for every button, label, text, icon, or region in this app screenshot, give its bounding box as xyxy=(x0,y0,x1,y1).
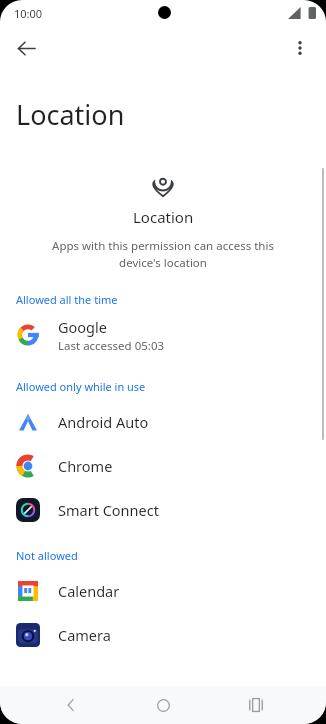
button[interactable]: Calendar xyxy=(0,569,326,613)
staticText: Camera xyxy=(58,625,111,645)
button[interactable]: Smart Connect xyxy=(0,488,326,532)
button[interactable]: Back xyxy=(49,686,93,724)
button[interactable]: More options xyxy=(280,28,320,68)
staticText: Google xyxy=(58,317,107,337)
button[interactable]: Android Auto xyxy=(0,400,326,444)
button[interactable]: Recent apps xyxy=(234,686,278,724)
button[interactable]: Camera xyxy=(0,613,326,657)
staticText: Location xyxy=(16,96,125,133)
staticText: Apps with this permission can access thi… xyxy=(34,238,292,270)
staticText: Not allowed xyxy=(16,548,78,563)
button[interactable]: Back xyxy=(6,28,46,68)
staticText: Allowed only while in use xyxy=(16,379,146,394)
staticText: 10:00 xyxy=(14,6,43,21)
staticText: Smart Connect xyxy=(58,500,159,520)
button[interactable]: Home xyxy=(141,686,185,724)
staticText: Chrome xyxy=(58,456,113,476)
staticText: Android Auto xyxy=(58,412,149,432)
staticText: Allowed all the time xyxy=(16,292,118,307)
button[interactable]: Google xyxy=(0,313,326,357)
button[interactable]: Chrome xyxy=(0,444,326,488)
staticText: Location xyxy=(133,207,194,227)
staticText: Last accessed 05:03 xyxy=(58,338,165,354)
staticText: Calendar xyxy=(58,581,120,601)
